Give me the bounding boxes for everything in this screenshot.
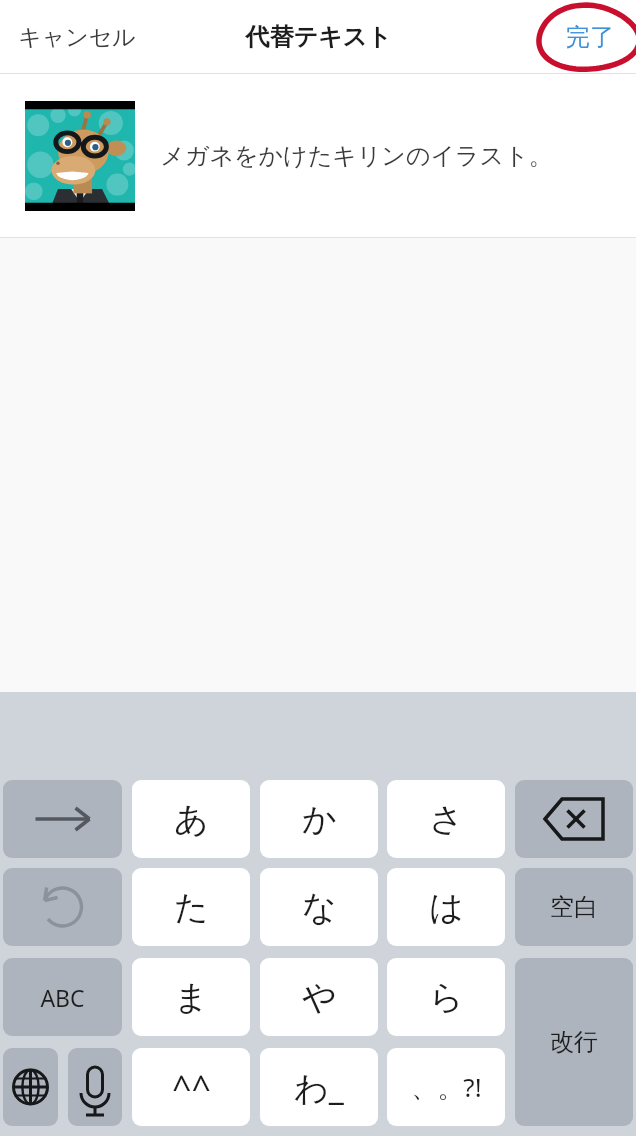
button[interactable]: あ: [132, 780, 250, 858]
button[interactable]: Dictation: [68, 1048, 122, 1126]
button[interactable]: キャンセル: [10, 15, 144, 60]
button[interactable]: 空白: [515, 868, 633, 946]
button[interactable]: Next candidate: [3, 780, 122, 858]
staticText: や: [302, 976, 337, 1019]
button[interactable]: Undo: [3, 868, 122, 946]
button[interactable]: 、。?!: [387, 1048, 505, 1126]
staticText: あ: [174, 798, 209, 841]
staticText: ま: [174, 976, 209, 1019]
staticText: 、。?!: [411, 1069, 482, 1105]
button[interactable]: や: [260, 958, 378, 1036]
staticText: メガネをかけたキリンのイラスト。: [160, 141, 553, 171]
staticText: な: [302, 886, 337, 929]
staticText: 代替テキスト: [245, 22, 392, 52]
staticText: 改行: [550, 1027, 598, 1057]
staticText: ^^: [172, 1064, 211, 1110]
button[interactable]: 完了: [558, 14, 622, 60]
button[interactable]: Backspace: [515, 780, 633, 858]
button[interactable]: ^^: [132, 1048, 250, 1126]
staticText: わ_: [294, 1064, 344, 1110]
button[interactable]: ら: [387, 958, 505, 1036]
button[interactable]: は: [387, 868, 505, 946]
staticText: キャンセル: [18, 23, 136, 52]
staticText: さ: [429, 798, 464, 841]
button[interactable]: わ_: [260, 1048, 378, 1126]
button[interactable]: メガネをかけたキリンのイラスト。: [0, 74, 636, 237]
staticText: た: [174, 886, 209, 929]
staticText: ら: [429, 976, 464, 1019]
button[interactable]: な: [260, 868, 378, 946]
button[interactable]: ま: [132, 958, 250, 1036]
staticText: は: [429, 886, 464, 929]
staticText: ABC: [40, 982, 85, 1013]
button[interactable]: さ: [387, 780, 505, 858]
staticText: 完了: [566, 22, 614, 52]
button[interactable]: ABC: [3, 958, 122, 1036]
button[interactable]: 改行: [515, 958, 633, 1126]
button[interactable]: か: [260, 780, 378, 858]
button[interactable]: Switch keyboard: [3, 1048, 58, 1126]
button[interactable]: た: [132, 868, 250, 946]
staticText: か: [302, 798, 337, 841]
staticText: 空白: [550, 892, 598, 922]
